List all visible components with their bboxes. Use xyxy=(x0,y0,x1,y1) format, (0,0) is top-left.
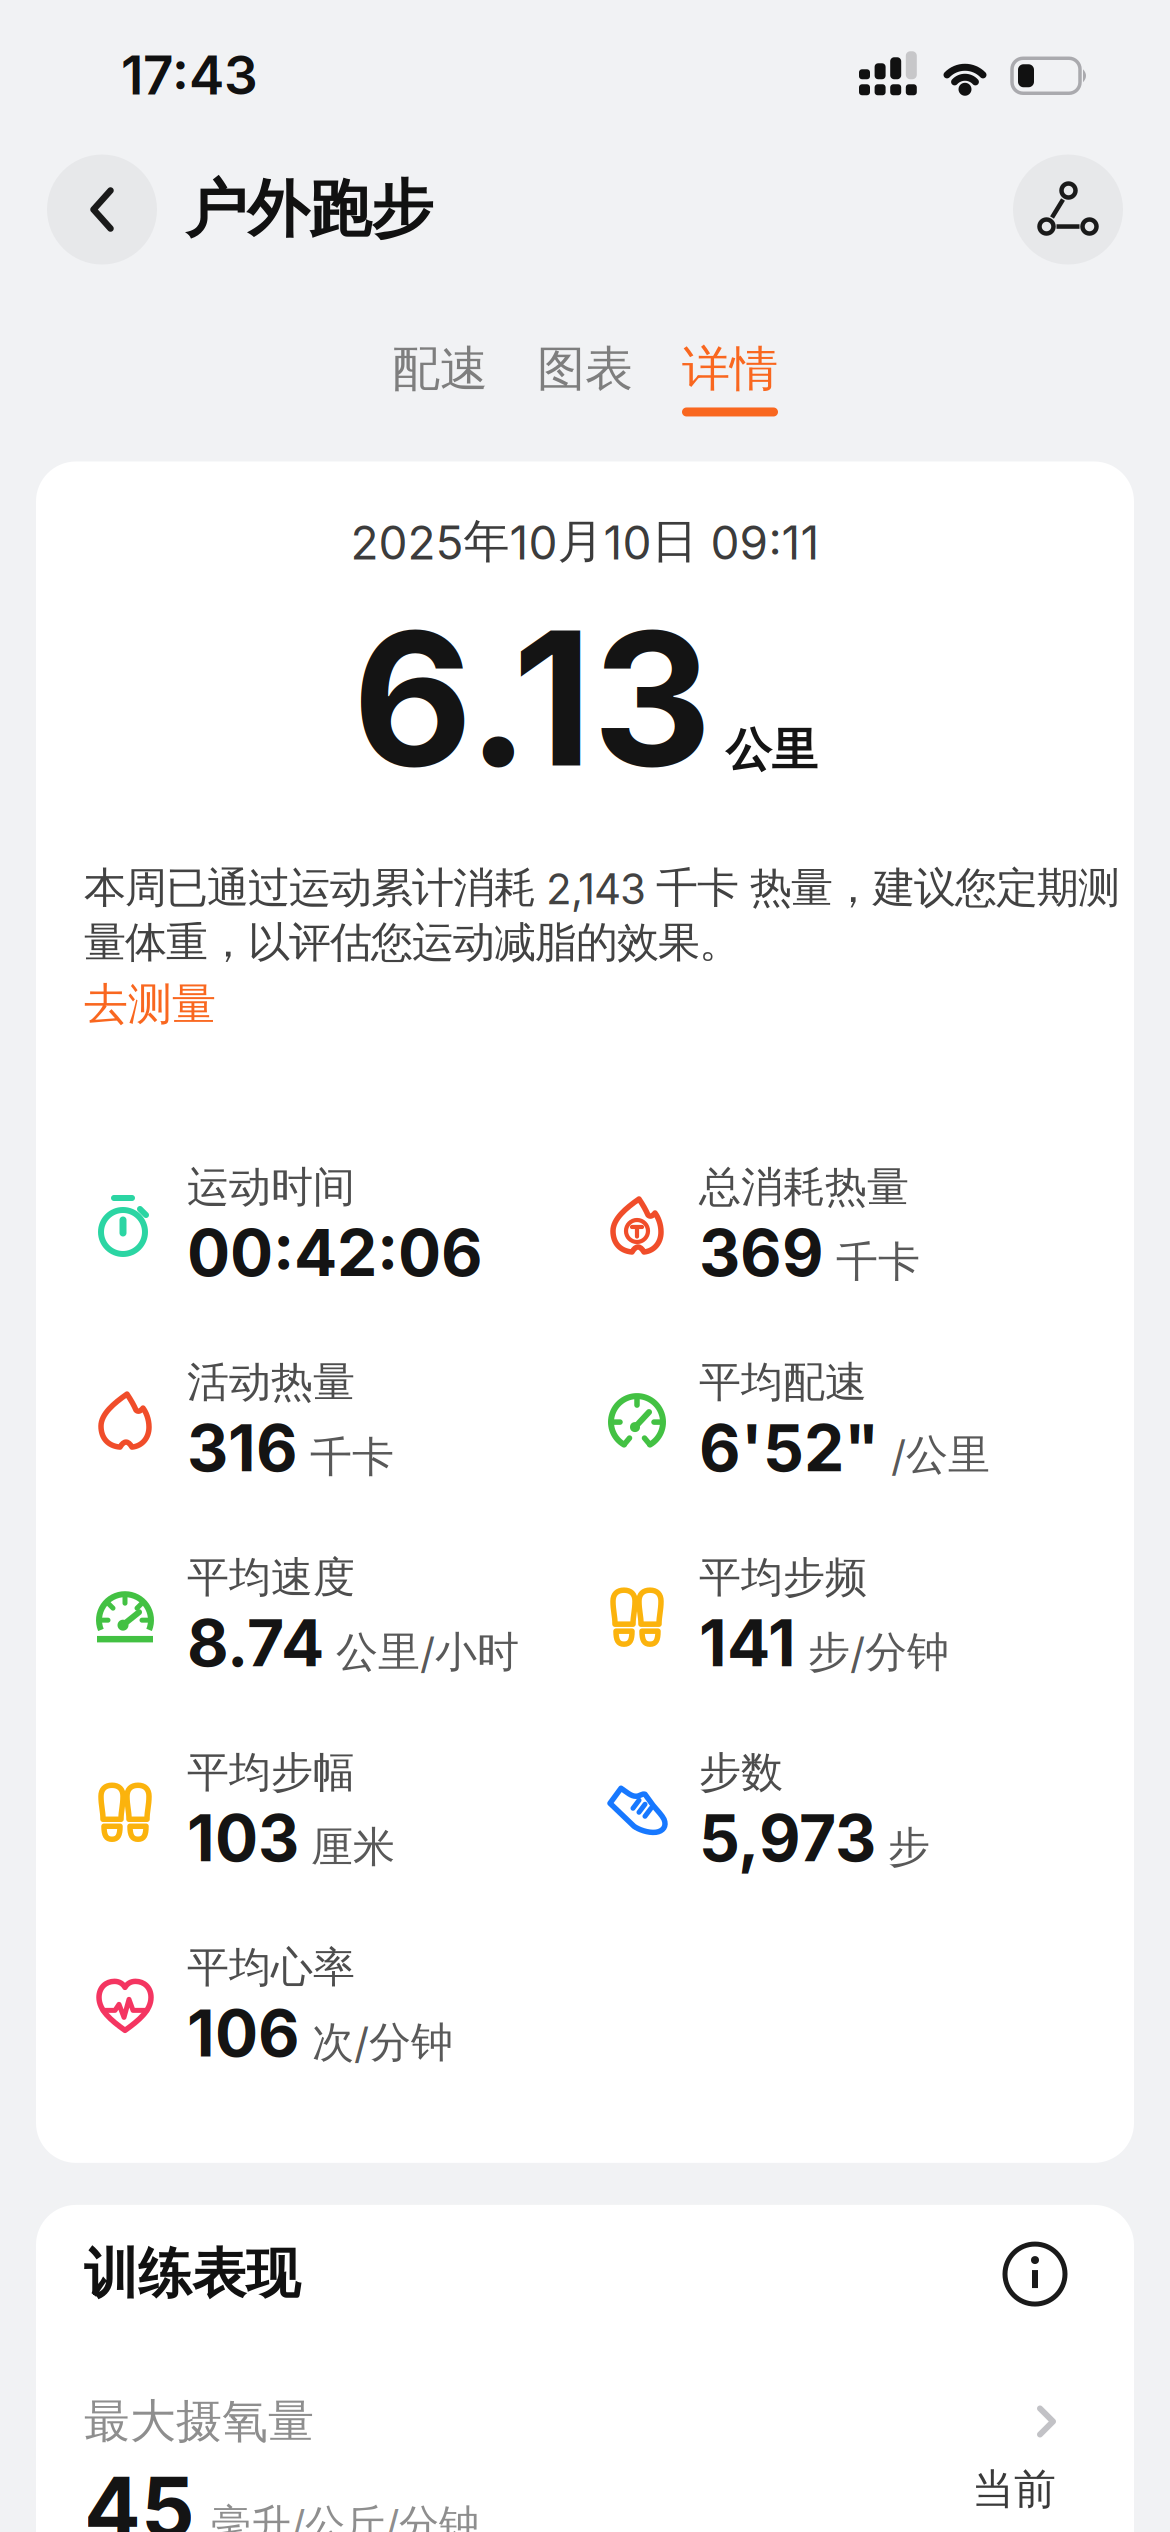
button[interactable]: 图表 xyxy=(537,339,633,416)
staticText: 平均步频 xyxy=(699,1552,867,1603)
staticText: 17:43 xyxy=(121,44,258,106)
staticText: 106 xyxy=(187,1995,300,2071)
button[interactable]: Info xyxy=(1002,2241,1068,2307)
staticText: 户外跑步 xyxy=(185,171,433,248)
staticText: 毫升/公斤/分钟 xyxy=(211,2500,479,2532)
staticText: 316 xyxy=(187,1410,298,1486)
button[interactable]: Share xyxy=(1013,154,1123,264)
staticText: 141 xyxy=(699,1605,796,1681)
staticText: 45 xyxy=(84,2458,195,2532)
staticText: /公里 xyxy=(891,1429,990,1481)
staticText: 去测量 xyxy=(84,977,216,1031)
staticText: 步数 xyxy=(699,1747,783,1798)
button[interactable]: Back xyxy=(47,154,157,264)
staticText: 6'52" xyxy=(699,1410,879,1486)
staticText: 次/分钟 xyxy=(312,2017,453,2068)
staticText: 训练表现 xyxy=(84,2241,300,2307)
staticText: 本周已通过运动累计消耗 2,143 千卡 热量，建议您定期测量体重，以评估您运动… xyxy=(84,862,1120,968)
staticText: 配速 xyxy=(392,339,488,398)
staticText: 5,973 xyxy=(699,1800,876,1876)
button[interactable]: 配速 xyxy=(392,339,488,416)
staticText: 00:42:06 xyxy=(187,1215,483,1290)
staticText: 千卡 xyxy=(310,1431,394,1483)
staticText: 2025年10月10日 09:11 xyxy=(350,513,819,570)
button[interactable]: 详情 xyxy=(682,339,778,416)
staticText: 公里 xyxy=(725,722,817,778)
staticText: 平均配速 xyxy=(699,1356,867,1408)
staticText: 图表 xyxy=(537,339,633,398)
staticText: 厘米 xyxy=(311,1822,395,1873)
staticText: 步/分钟 xyxy=(808,1626,949,1678)
staticText: 103 xyxy=(187,1800,299,1876)
button[interactable]: 去测量 xyxy=(36,968,216,1031)
button[interactable]: 最大摄氧量 xyxy=(36,2307,1134,2450)
staticText: 千卡 xyxy=(836,1236,920,1288)
staticText: 平均步幅 xyxy=(187,1747,355,1798)
staticText: 平均心率 xyxy=(187,1942,355,1993)
staticText: 当前 xyxy=(972,2464,1056,2515)
staticText: 步 xyxy=(888,1822,930,1873)
staticText: 活动热量 xyxy=(187,1356,355,1408)
staticText: 最大摄氧量 xyxy=(84,2393,314,2450)
staticText: 8.74 xyxy=(187,1605,324,1681)
staticText: 369 xyxy=(699,1215,824,1290)
staticText: 6.13 xyxy=(352,589,711,807)
staticText: 平均速度 xyxy=(187,1552,355,1603)
staticText: 详情 xyxy=(682,339,778,398)
staticText: 运动时间 xyxy=(187,1161,355,1213)
staticText: 公里/小时 xyxy=(336,1626,519,1678)
staticText: 总消耗热量 xyxy=(699,1161,909,1213)
